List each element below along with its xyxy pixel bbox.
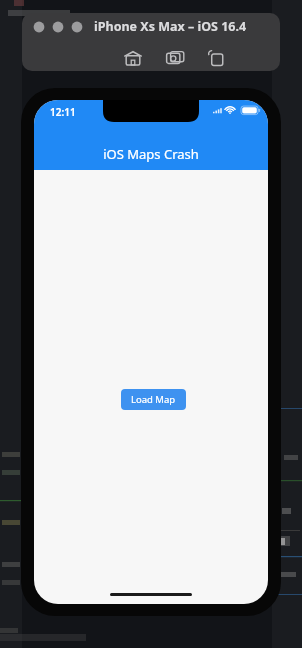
staticText: iOS Maps Crash [103,145,199,163]
button[interactable]: Load Map [121,389,186,410]
staticText: 12:11 [50,105,76,119]
button[interactable]: Home [122,46,144,68]
staticText: Load Map [131,393,176,406]
button[interactable]: Screenshot [164,46,186,68]
staticText: iPhone Xs Max – iOS 16.4 [94,18,247,35]
button[interactable]: Rotate [206,46,228,68]
